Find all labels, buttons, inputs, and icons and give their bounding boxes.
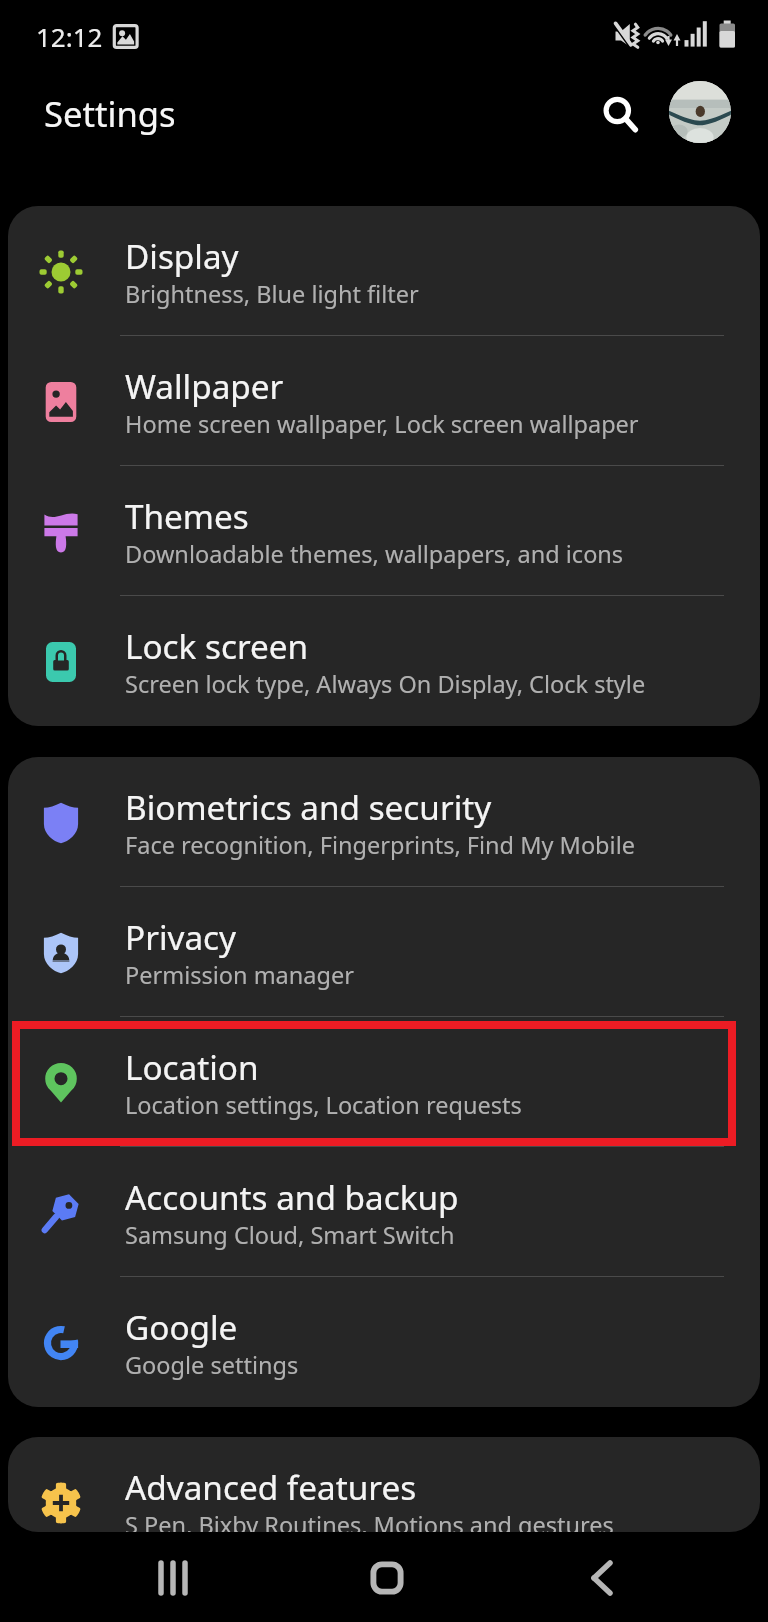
staticText: Lock screen — [125, 623, 309, 668]
staticText: Face recognition, Fingerprints, Find My … — [125, 829, 635, 861]
button[interactable]: Wallpaper — [8, 336, 760, 466]
button[interactable]: Privacy — [8, 887, 760, 1017]
button[interactable]: Lock screen — [8, 596, 760, 726]
staticText: Wallpaper — [125, 363, 284, 408]
staticText: Home screen wallpaper, Lock screen wallp… — [125, 408, 639, 440]
staticText: Permission manager — [125, 959, 354, 991]
staticText: Location — [125, 1044, 259, 1089]
button[interactable]: Advanced features — [8, 1437, 760, 1532]
staticText: Screen lock type, Always On Display, Clo… — [125, 668, 646, 700]
staticText: Brightness, Blue light filter — [125, 278, 419, 310]
staticText: 12:12 — [36, 19, 103, 54]
button[interactable]: Back — [559, 1535, 645, 1621]
staticText: Accounts and backup — [125, 1174, 459, 1219]
staticText: Themes — [125, 493, 249, 538]
button[interactable]: Google — [8, 1277, 760, 1407]
staticText: Google — [125, 1304, 238, 1349]
staticText: Location settings, Location requests — [125, 1089, 522, 1121]
button[interactable]: Home — [344, 1535, 430, 1621]
staticText: Privacy — [125, 914, 237, 959]
button[interactable]: Search — [589, 81, 647, 139]
button[interactable]: Location — [8, 1017, 760, 1147]
button[interactable]: Accounts and backup — [8, 1147, 760, 1277]
staticText: Settings — [44, 90, 176, 137]
button[interactable]: Biometrics and security — [8, 757, 760, 887]
staticText: Downloadable themes, wallpapers, and ico… — [125, 538, 624, 570]
staticText: S Pen, Bixby Routines, Motions and gestu… — [125, 1509, 614, 1532]
staticText: Google settings — [125, 1349, 299, 1381]
staticText: Biometrics and security — [125, 784, 492, 829]
staticText: Advanced features — [125, 1464, 417, 1509]
staticText: Samsung Cloud, Smart Switch — [125, 1219, 455, 1251]
button[interactable]: Themes — [8, 466, 760, 596]
button[interactable]: Display — [8, 206, 760, 336]
button[interactable]: Recents — [130, 1535, 216, 1621]
button[interactable]: Account profile — [669, 81, 731, 143]
staticText: Display — [125, 233, 239, 278]
